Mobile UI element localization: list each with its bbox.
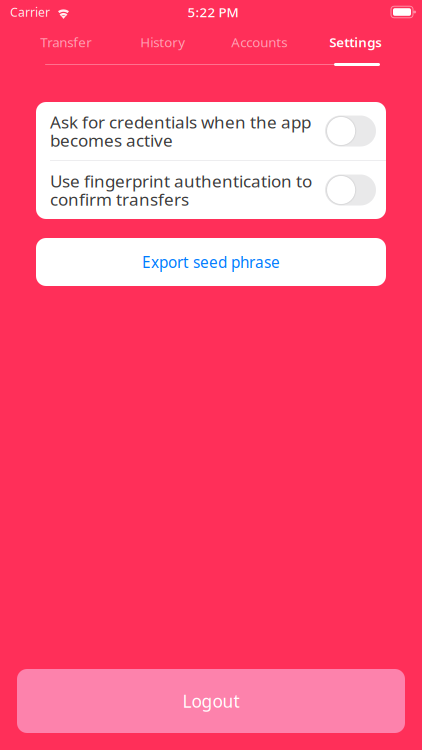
button[interactable]: Use fingerprint authentication to confir… — [36, 161, 386, 219]
staticText: Logout — [182, 689, 239, 713]
staticText: History — [140, 33, 185, 51]
staticText: Use fingerprint authentication to confir… — [50, 169, 312, 211]
button[interactable]: Ask for credentials when the app becomes… — [36, 102, 386, 160]
button[interactable]: Logout — [17, 669, 405, 733]
staticText: Transfer — [40, 33, 92, 51]
staticText: 5:22 PM — [187, 3, 238, 21]
button[interactable]: Export seed phrase — [36, 238, 386, 286]
button[interactable]: Settings — [307, 29, 404, 55]
staticText: Carrier — [10, 4, 50, 20]
staticText: Export seed phrase — [142, 252, 280, 272]
button[interactable]: Transfer — [18, 29, 114, 55]
button[interactable]: Toggle: Use fingerprint authentication t… — [325, 174, 376, 205]
staticText: Settings — [329, 33, 382, 51]
staticText: Ask for credentials when the app becomes… — [50, 110, 311, 152]
button[interactable]: Accounts — [211, 29, 307, 55]
button[interactable]: History — [114, 29, 211, 55]
staticText: Accounts — [231, 33, 287, 51]
button[interactable]: Toggle: Ask for credentials when the app… — [325, 115, 376, 146]
